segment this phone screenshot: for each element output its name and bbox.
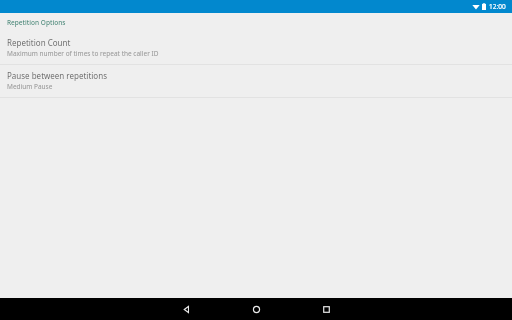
button[interactable]: Home — [221, 298, 291, 320]
button[interactable]: Pause between repetitions — [0, 65, 512, 97]
staticText: Repetition Count — [7, 37, 71, 48]
staticText: Pause between repetitions — [7, 70, 107, 81]
staticText: Medium Pause — [7, 82, 53, 91]
staticText: Maximum number of times to repeat the ca… — [7, 49, 159, 58]
staticText: Repetition Options — [7, 18, 66, 27]
staticText: 12:00 — [489, 2, 506, 11]
button[interactable]: Recent apps — [291, 298, 361, 320]
button[interactable]: Back — [151, 298, 221, 320]
button[interactable]: Repetition Count — [0, 32, 512, 64]
